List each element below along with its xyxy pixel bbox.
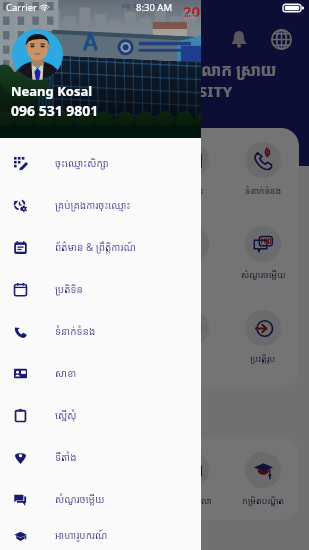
staticText: ទំនាក់ទំនង [245, 184, 282, 196]
button[interactable]: ចុះឈ្មោះ [10, 142, 83, 196]
staticText: 096 531 9801 [11, 101, 99, 120]
staticText: 8:30 AM [136, 1, 173, 14]
button[interactable]: ព័ត៌មាន [155, 142, 227, 196]
button[interactable]: ទីតាំង [155, 226, 227, 280]
button[interactable]: គ្រប់គ្រង [83, 142, 155, 196]
button[interactable]: ប្រតិទិន [10, 226, 83, 280]
staticText: ព័ត៌មាន [178, 184, 204, 196]
button[interactable]: ទំនាក់ទំនង [227, 142, 299, 196]
button[interactable]: បង់ថ្លៃសាលា [155, 452, 227, 506]
button[interactable]: សាខា [83, 226, 155, 280]
button[interactable]: ស្នើសុំ [10, 310, 83, 364]
staticText: Neang Kosal [11, 82, 93, 100]
button[interactable]: ឯកសារ [83, 310, 155, 364]
staticText: ទំនាក់ទំនង [55, 324, 96, 338]
button[interactable]: អាហារូបករណ៍ [0, 520, 201, 550]
button[interactable]: កម្រិតបណ្ឌិត [227, 452, 299, 506]
button[interactable]: ទីតាំង [0, 436, 201, 478]
button[interactable]: សំណួរចម្លើយ [227, 226, 299, 280]
staticText: Carrier [6, 1, 37, 14]
button[interactable]: ប្រតិទិន [0, 268, 201, 310]
staticText: សាកលវិទ្យាល័យ ភ្លឺស្វាងពិភពលោក ស្រាយ [14, 59, 277, 81]
button[interactable]: វីដេអូ [155, 310, 227, 364]
button[interactable]: សំណួរចម្លើយ [0, 478, 201, 520]
staticText: បណ្ណាល័យ [28, 494, 65, 506]
staticText: សំណួរចម្លើយ [55, 492, 105, 506]
staticText: ទីតាំង [55, 450, 77, 464]
staticText: ព័ត៌មាន & ព្រឹត្តិការណ៍ [55, 240, 136, 254]
button[interactable]: ការងារ [83, 452, 155, 506]
staticText: ប្រវត្តិរូប [250, 352, 276, 364]
button[interactable]: Notifications [223, 23, 255, 55]
staticText: ចន្ទ ១៣ មករា [122, 1, 159, 11]
staticText: 20° [183, 1, 201, 21]
staticText: កម្រិតបណ្ឌិត [242, 494, 285, 506]
button[interactable]: សាខា [0, 352, 201, 394]
staticText: ស្នើសុំ [55, 408, 77, 422]
button[interactable]: ព័ត៌មាន & ព្រឹត្តិការណ៍ [0, 226, 201, 268]
button[interactable]: ស្នើសុំ [0, 394, 201, 436]
button[interactable]: គ្រប់គ្រងការចុះឈ្មោះ [0, 184, 201, 226]
button[interactable]: Language [265, 23, 297, 55]
staticText: សំណួរចម្លើយ [241, 268, 286, 280]
staticText: ប្រតិទិន [55, 282, 83, 296]
staticText: ភ្នំពេញ [182, 12, 198, 20]
button[interactable]: ទំនាក់ទំនង [0, 310, 201, 352]
staticText: ចុះឈ្មោះសិក្សា [55, 156, 109, 170]
button[interactable]: ប្រវត្តិរូប [227, 310, 299, 364]
staticText: បង់ថ្លៃសាលា [170, 494, 212, 506]
staticText: គ្រប់គ្រងការចុះឈ្មោះ [55, 198, 131, 212]
staticText: សាខា [55, 366, 77, 380]
button[interactable]: បណ្ណាល័យ [10, 452, 83, 506]
staticText: អាហារូបករណ៍ [55, 528, 108, 542]
staticText: WORLD BRIGHT UNIVERSITY [14, 81, 233, 101]
button[interactable]: ចុះឈ្មោះសិក្សា [0, 142, 201, 184]
